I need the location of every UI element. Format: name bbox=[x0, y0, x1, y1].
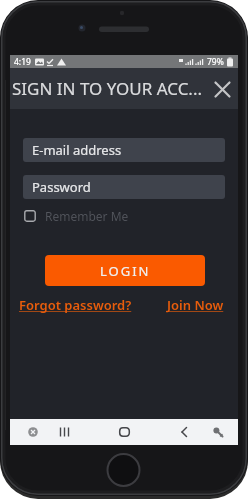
button[interactable] bbox=[175, 423, 193, 441]
button[interactable] bbox=[24, 423, 42, 441]
button[interactable]: Remember Me bbox=[24, 208, 129, 224]
staticText: Password bbox=[32, 178, 91, 196]
staticText: E-mail address bbox=[32, 141, 122, 159]
staticText: LOGIN bbox=[100, 262, 151, 280]
button[interactable]: Password bbox=[23, 175, 225, 199]
staticText: 79% bbox=[207, 56, 224, 68]
button[interactable]: Join Now bbox=[167, 296, 224, 314]
button[interactable] bbox=[56, 423, 74, 441]
staticText: Remember Me bbox=[45, 208, 129, 224]
staticText: 4:19 bbox=[14, 56, 31, 68]
button[interactable]: Forgot password? bbox=[19, 296, 132, 314]
staticText: SIGN IN TO YOUR ACC... bbox=[12, 77, 212, 100]
button[interactable] bbox=[209, 423, 227, 441]
button[interactable] bbox=[115, 423, 133, 441]
button[interactable]: E-mail address bbox=[23, 138, 225, 162]
button[interactable]: LOGIN bbox=[45, 255, 205, 286]
button[interactable] bbox=[212, 79, 232, 99]
